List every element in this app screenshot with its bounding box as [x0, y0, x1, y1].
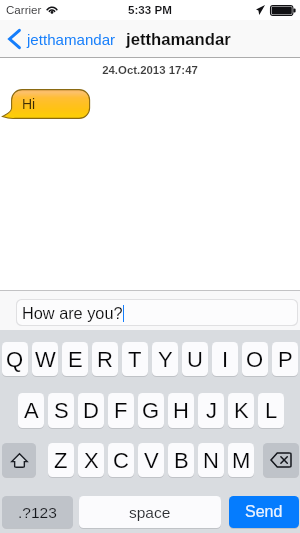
staticText: L	[265, 398, 278, 423]
staticText: jetthamandar	[27, 31, 116, 48]
button[interactable]: M	[228, 443, 254, 477]
button[interactable]: R	[92, 342, 118, 376]
staticText: E	[68, 347, 83, 372]
button[interactable]: Shift	[2, 443, 36, 477]
staticText: S	[54, 398, 69, 423]
button[interactable]: F	[108, 393, 134, 428]
button[interactable]: P	[272, 342, 298, 376]
button[interactable]: jetthamandar	[0, 24, 124, 54]
button[interactable]: B	[168, 443, 194, 477]
button[interactable]: H	[168, 393, 194, 428]
button[interactable]: Q	[2, 342, 28, 376]
staticText: M	[232, 448, 251, 473]
button[interactable]: S	[48, 393, 74, 428]
button[interactable]: T	[122, 342, 148, 376]
staticText: 5:33 PM	[128, 3, 172, 16]
staticText: D	[83, 398, 99, 423]
staticText: How are you?	[22, 304, 123, 322]
staticText: N	[203, 448, 219, 473]
staticText: W	[35, 347, 56, 372]
button[interactable]: Send	[229, 496, 299, 528]
staticText: A	[24, 398, 39, 423]
button[interactable]: X	[78, 443, 104, 477]
button[interactable]: U	[182, 342, 208, 376]
staticText: Hi	[22, 96, 36, 112]
staticText: jetthamandar	[126, 30, 231, 49]
staticText: T	[128, 347, 142, 372]
button[interactable]: W	[32, 342, 58, 376]
staticText: K	[234, 398, 249, 423]
staticText: B	[174, 448, 189, 473]
staticText: O	[246, 347, 264, 372]
button[interactable]: D	[78, 393, 104, 428]
button[interactable]: Y	[152, 342, 178, 376]
staticText: X	[84, 448, 99, 473]
button[interactable]: J	[198, 393, 224, 428]
staticText: .?123	[18, 504, 57, 521]
staticText: space	[129, 504, 171, 521]
button[interactable]: I	[212, 342, 238, 376]
staticText: P	[278, 347, 293, 372]
staticText: 24.Oct.2013 17:47	[0, 64, 300, 77]
button[interactable]: Z	[48, 443, 74, 477]
staticText: H	[173, 398, 189, 423]
staticText: Carrier	[6, 3, 42, 16]
staticText: G	[142, 398, 160, 423]
staticText: J	[206, 398, 217, 423]
staticText: F	[114, 398, 128, 423]
button[interactable]: V	[138, 443, 164, 477]
button[interactable]: .?123	[2, 496, 73, 528]
button[interactable]: space	[79, 496, 221, 528]
staticText: Send	[245, 503, 283, 521]
button[interactable]: A	[18, 393, 44, 428]
button[interactable]: Backspace	[263, 443, 299, 477]
button[interactable]: O	[242, 342, 268, 376]
staticText: I	[222, 347, 229, 372]
staticText: R	[97, 347, 113, 372]
button[interactable]: E	[62, 342, 88, 376]
staticText: C	[113, 448, 129, 473]
button[interactable]: How are you?	[17, 300, 297, 325]
button[interactable]: C	[108, 443, 134, 477]
staticText: Z	[54, 448, 68, 473]
button[interactable]: K	[228, 393, 254, 428]
button[interactable]: G	[138, 393, 164, 428]
staticText: U	[187, 347, 203, 372]
button[interactable]: N	[198, 443, 224, 477]
staticText: Y	[158, 347, 173, 372]
staticText: Q	[6, 347, 24, 372]
staticText: V	[144, 448, 159, 473]
button[interactable]: L	[258, 393, 284, 428]
